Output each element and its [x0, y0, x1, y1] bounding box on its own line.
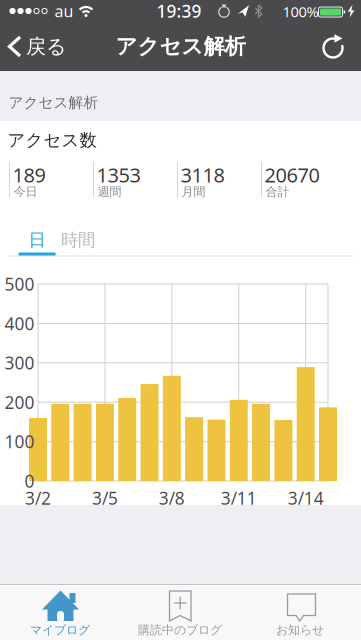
staticText: 500 [4, 272, 34, 295]
button[interactable]: 購読中のブログ [120, 585, 240, 640]
staticText: 月間 [181, 184, 205, 199]
staticText: 20670 [264, 161, 319, 188]
staticText: 3/5 [92, 486, 118, 509]
staticText: お知らせ [276, 623, 324, 637]
button[interactable]: お知らせ [240, 585, 360, 640]
staticText: 100% [282, 2, 318, 21]
staticText: アクセス解析 [115, 33, 245, 60]
staticText: 189 [12, 161, 45, 188]
staticText: 3118 [180, 161, 224, 188]
staticText: アクセス数 [7, 129, 96, 151]
staticText: 3/11 [221, 486, 257, 509]
staticText: マイブログ [30, 623, 90, 637]
staticText: 1353 [96, 161, 140, 188]
staticText: 100 [4, 430, 34, 453]
staticText: 今日 [13, 184, 37, 199]
staticText: アクセス解析 [8, 93, 98, 111]
staticText: 3/8 [159, 486, 185, 509]
staticText: 戻る [26, 34, 66, 59]
button[interactable]: 日 [18, 221, 55, 255]
staticText: 合計 [265, 184, 289, 199]
button[interactable]: 時間 [56, 225, 100, 255]
button[interactable]: 戻る [0, 22, 72, 71]
button[interactable]: マイブログ [0, 585, 120, 640]
staticText: 3/14 [288, 486, 324, 509]
staticText: 時間 [61, 229, 95, 251]
button[interactable]: Refresh [311, 22, 355, 71]
staticText: 日 [28, 229, 45, 251]
staticText: 400 [4, 312, 34, 335]
staticText: 0 [24, 469, 34, 492]
staticText: 19:39 [156, 0, 201, 22]
staticText: 200 [4, 391, 34, 414]
staticText: 300 [4, 351, 34, 374]
staticText: au [54, 0, 73, 22]
staticText: 週間 [97, 184, 121, 199]
staticText: 購読中のブログ [138, 623, 222, 637]
staticText: 3/2 [25, 486, 51, 509]
